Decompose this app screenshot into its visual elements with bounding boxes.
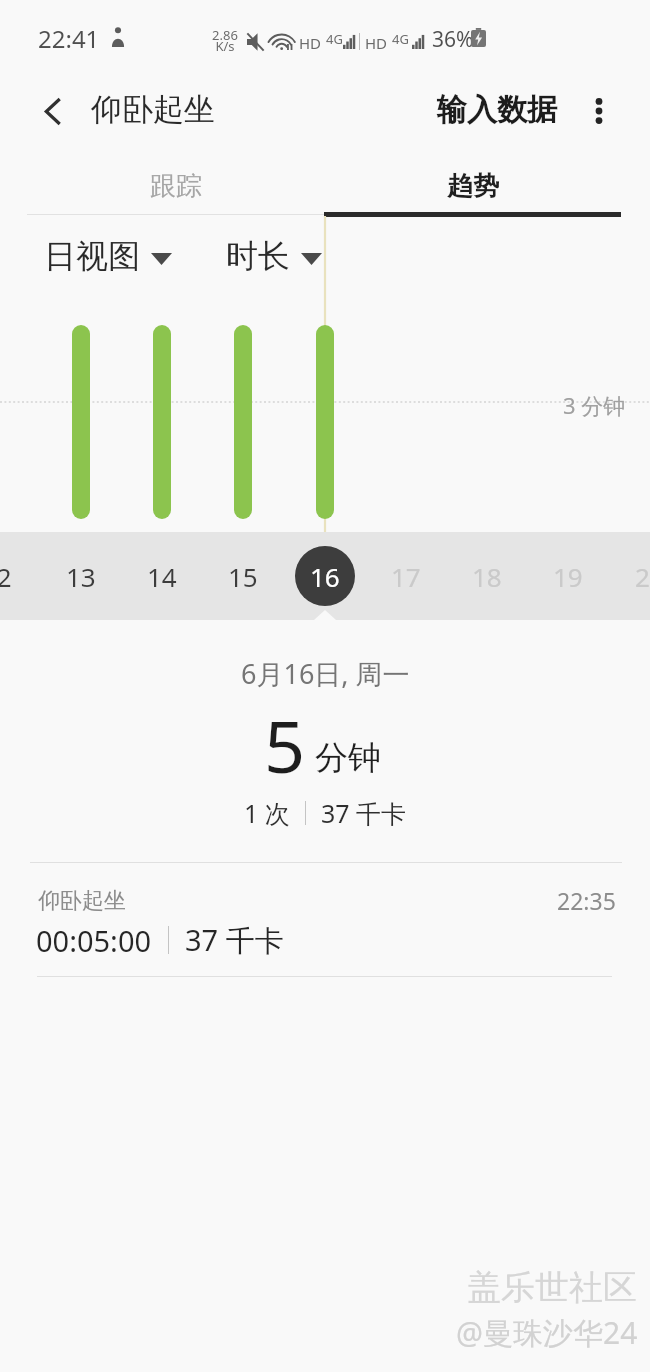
staticText: 盖乐世社区 xyxy=(467,1266,637,1309)
staticText: 22:35 xyxy=(557,885,616,916)
staticText: 输入数据 xyxy=(437,91,557,129)
staticText: 时长 xyxy=(226,236,290,276)
staticText: HD xyxy=(365,33,388,53)
button[interactable]: 时长 xyxy=(220,228,328,284)
staticText: 18 xyxy=(472,559,502,594)
staticText: 16 xyxy=(310,559,340,594)
staticText: 分钟 xyxy=(315,737,381,779)
staticText: 12 xyxy=(0,559,12,594)
staticText: 日视图 xyxy=(44,236,140,276)
staticText: 2.86 K/s xyxy=(212,26,238,55)
button[interactable]: 跟踪 xyxy=(27,152,324,216)
button[interactable]: More options xyxy=(571,83,627,139)
staticText: 14 xyxy=(147,559,177,594)
button[interactable]: 仰卧起坐 xyxy=(0,862,650,978)
button[interactable]: 12 xyxy=(0,546,27,606)
button[interactable]: 15 xyxy=(213,546,273,606)
button[interactable]: 趋势 xyxy=(324,152,621,216)
staticText: 5 xyxy=(264,696,306,794)
staticText: 17 xyxy=(391,559,421,594)
button[interactable]: Back xyxy=(27,85,79,137)
staticText: 6月16日, 周一 xyxy=(241,655,410,692)
button[interactable]: 17 xyxy=(376,546,436,606)
staticText: 4G xyxy=(326,30,343,48)
staticText: 跟踪 xyxy=(150,170,202,203)
button[interactable]: 16 xyxy=(295,546,355,606)
staticText: 趋势 xyxy=(447,170,499,203)
staticText: @曼珠沙华24 xyxy=(456,1312,638,1353)
button[interactable]: 日视图 xyxy=(38,228,178,284)
button[interactable]: 输入数据 xyxy=(429,79,565,141)
staticText: 37 千卡 xyxy=(185,920,284,960)
staticText: 1 次 xyxy=(244,796,290,830)
staticText: 3 分钟 xyxy=(563,390,626,420)
staticText: 00:05:00 xyxy=(36,921,152,960)
staticText: 仰卧起坐 xyxy=(38,887,126,915)
staticText: 仰卧起坐 xyxy=(91,90,215,129)
button[interactable]: 20 xyxy=(620,546,650,606)
button[interactable]: 13 xyxy=(51,546,111,606)
staticText: 15 xyxy=(228,559,258,594)
staticText: 13 xyxy=(66,559,96,594)
staticText: 37 千卡 xyxy=(321,796,407,830)
staticText: 36% xyxy=(432,25,474,54)
button[interactable]: 19 xyxy=(538,546,598,606)
staticText: 22:41 xyxy=(38,22,100,55)
staticText: 19 xyxy=(553,559,583,594)
staticText: 20 xyxy=(635,559,650,594)
staticText: HD xyxy=(299,33,322,53)
button[interactable]: 18 xyxy=(457,546,517,606)
staticText: 4G xyxy=(392,30,409,48)
button[interactable]: 14 xyxy=(132,546,192,606)
